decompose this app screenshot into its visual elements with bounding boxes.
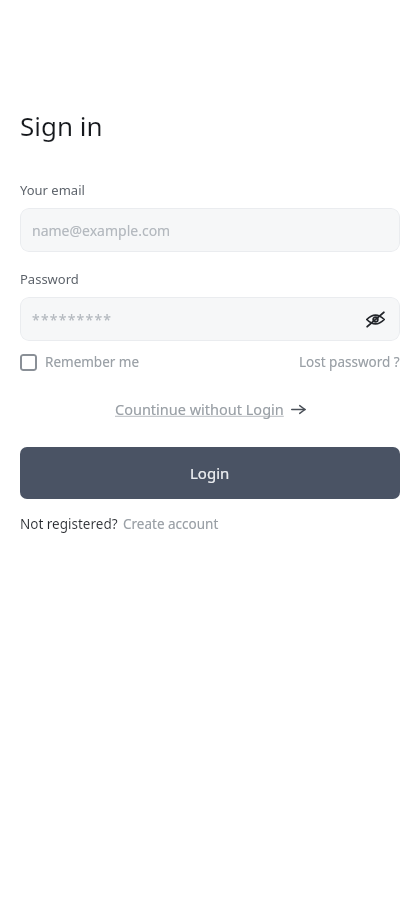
staticText: Password [20, 270, 79, 288]
staticText: Remember me [45, 353, 140, 371]
staticText: Not registered? [20, 515, 118, 533]
staticText: Create account [123, 515, 219, 533]
staticText: ********* [32, 310, 362, 329]
staticText: Your email [20, 181, 85, 199]
button[interactable]: Login [20, 447, 400, 499]
staticText: Login [190, 463, 230, 483]
button[interactable]: Show password [362, 306, 388, 332]
button[interactable]: Remember me [20, 353, 140, 371]
button[interactable]: Not registered? [20, 515, 219, 533]
staticText: Countinue without Login [115, 399, 284, 419]
button[interactable]: Countinue without Login [115, 397, 306, 421]
staticText: Lost password ? [299, 353, 400, 371]
button[interactable]: name@example.com [20, 208, 400, 252]
button[interactable]: ********* [20, 297, 400, 341]
button[interactable]: Lost password ? [299, 353, 400, 371]
staticText: Sign in [20, 108, 103, 143]
staticText: name@example.com [32, 221, 171, 240]
